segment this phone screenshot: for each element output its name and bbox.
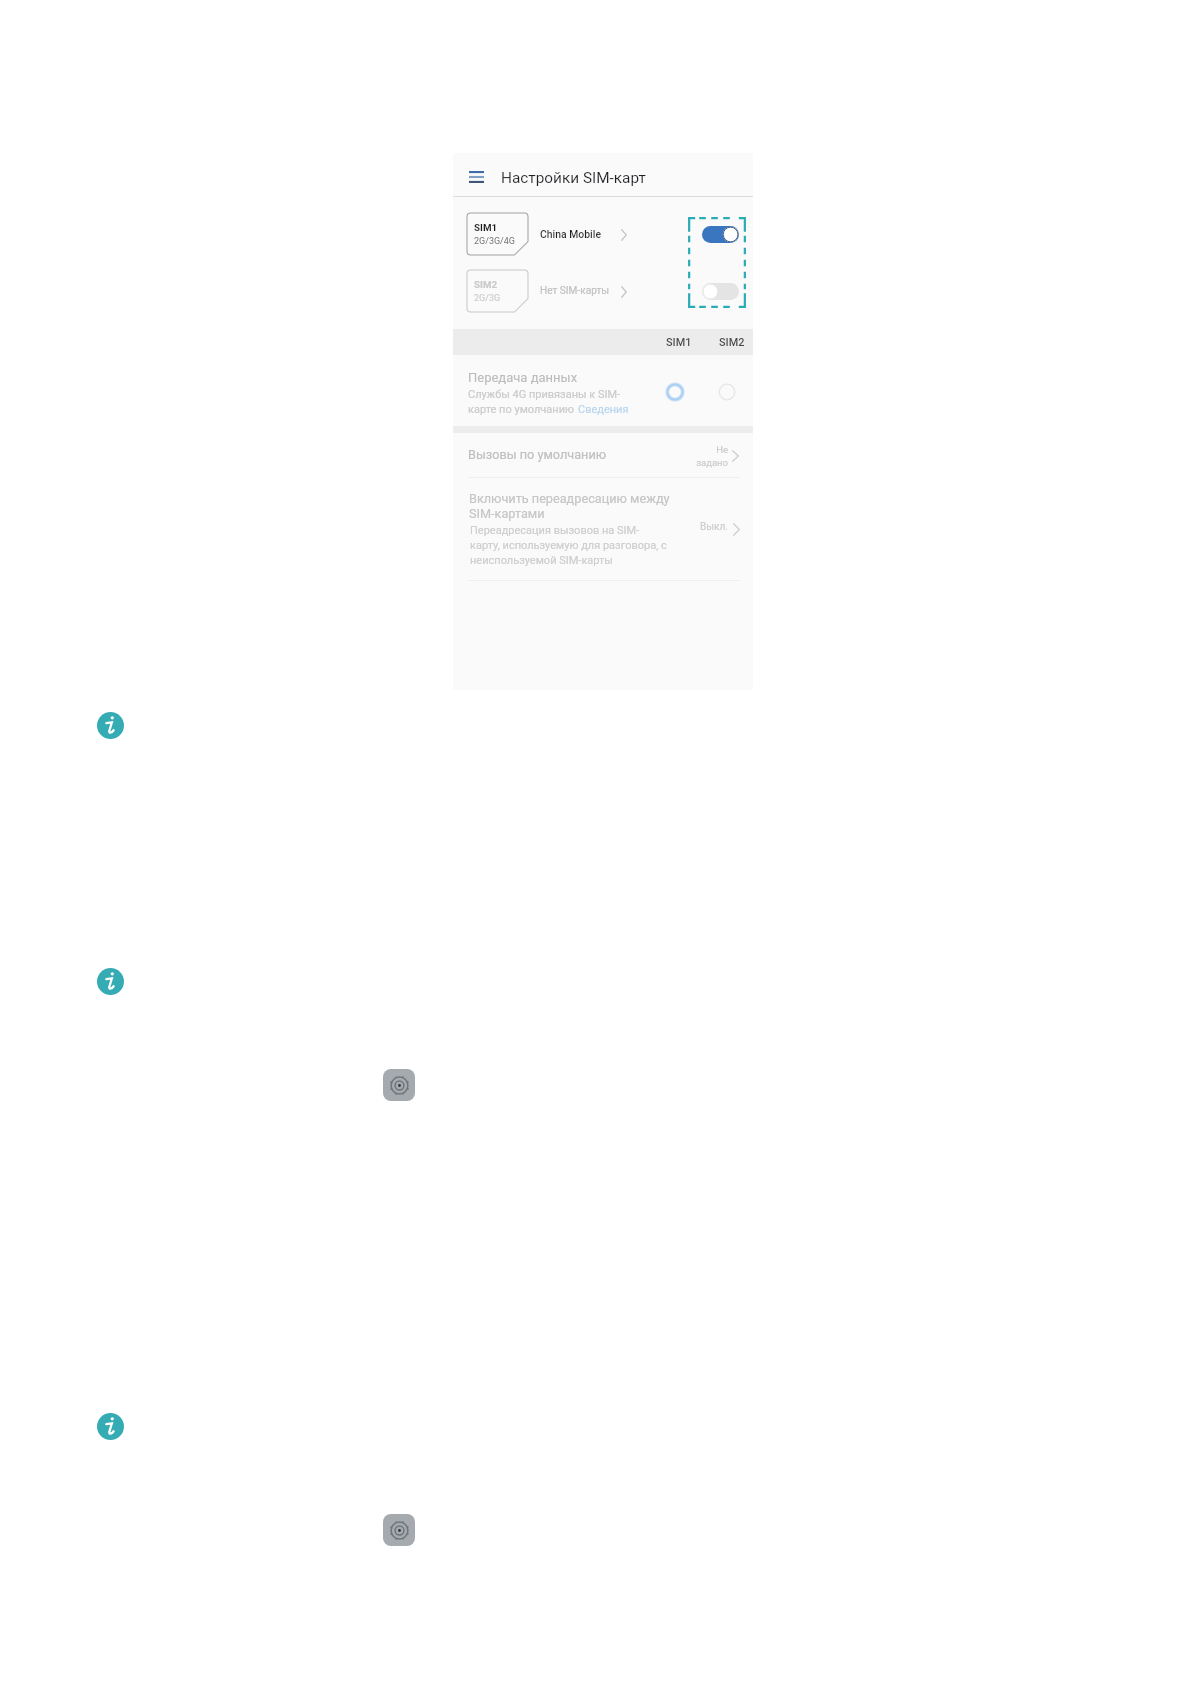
button[interactable]: Toggle SIM2 bbox=[702, 282, 739, 301]
staticText: SIM2 bbox=[719, 336, 745, 349]
button[interactable]: Settings bbox=[383, 1514, 415, 1546]
button[interactable]: SIM2 Нет SIM-карты bbox=[453, 263, 753, 320]
button[interactable]: SIM1 China Mobile bbox=[453, 206, 753, 263]
staticText: China Mobile bbox=[540, 228, 601, 240]
button[interactable]: Information bbox=[97, 712, 124, 739]
button[interactable]: SIM1 data bbox=[666, 383, 684, 401]
staticText: Нет SIM-карты bbox=[540, 285, 610, 297]
staticText: SIM2 bbox=[474, 279, 498, 290]
button[interactable]: Information bbox=[97, 1413, 124, 1440]
staticText: Передача данных bbox=[468, 370, 578, 385]
staticText: SIM1 bbox=[666, 336, 692, 349]
staticText: 2G/3G bbox=[474, 293, 501, 304]
button[interactable]: Toggle SIM1 bbox=[702, 225, 739, 244]
staticText: Сведения bbox=[578, 403, 629, 416]
button[interactable]: Вызовы по умолчанию bbox=[453, 433, 753, 477]
button[interactable]: Settings bbox=[383, 1069, 415, 1101]
staticText: Включить переадресацию между SIM-картами bbox=[469, 491, 670, 521]
staticText: SIM1 bbox=[474, 222, 498, 233]
staticText: 2G/3G/4G bbox=[474, 236, 515, 247]
button[interactable]: SIM2 data bbox=[718, 383, 736, 401]
staticText: Переадресация вызовов на SIM- карту, исп… bbox=[470, 524, 667, 566]
staticText: Вызовы по умолчанию bbox=[468, 447, 607, 462]
button[interactable]: Включить переадресацию между SIM-картами bbox=[453, 478, 753, 580]
staticText: Настройки SIM-карт bbox=[501, 169, 646, 187]
staticText: Выкл. bbox=[700, 521, 728, 533]
button[interactable]: Menu bbox=[461, 160, 497, 190]
staticText: Не задано bbox=[694, 444, 728, 469]
button[interactable]: Передача данных bbox=[453, 355, 753, 426]
button[interactable]: Information bbox=[97, 968, 124, 995]
staticText: Службы 4G привязаны к SIM- карте по умол… bbox=[468, 388, 621, 415]
